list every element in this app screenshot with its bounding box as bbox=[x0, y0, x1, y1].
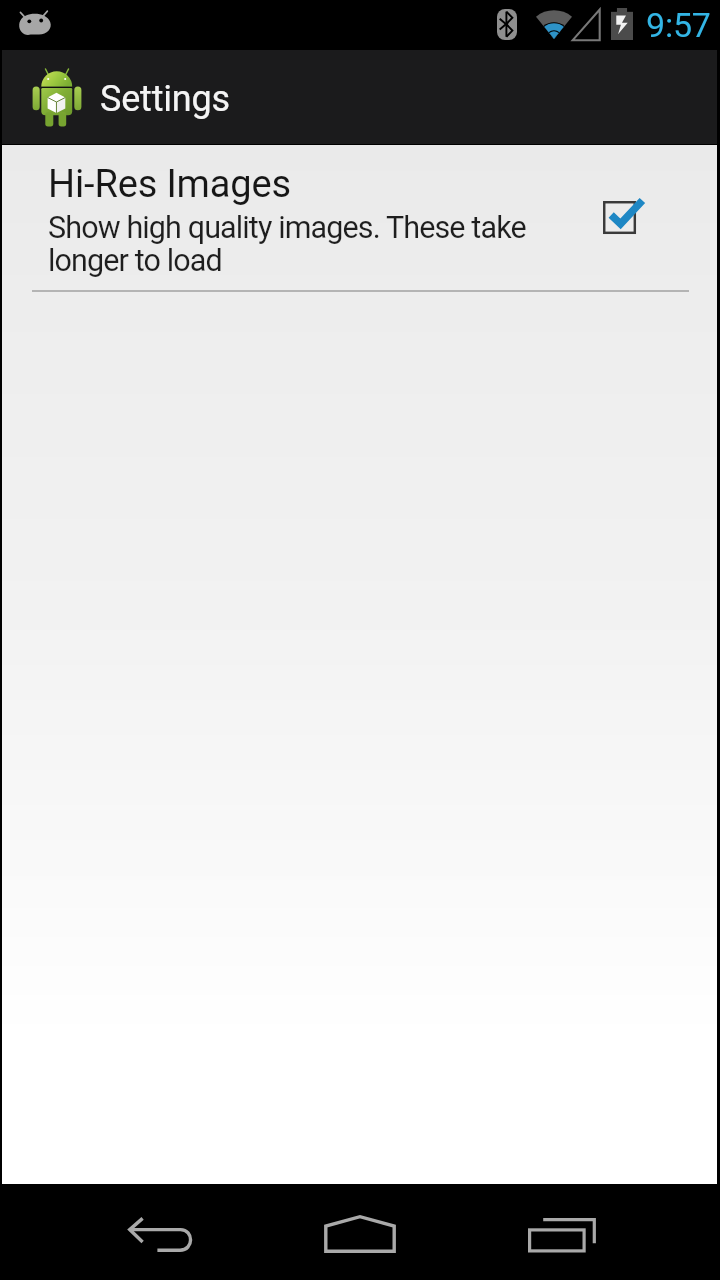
button[interactable]: Hi-Res Images bbox=[2, 145, 717, 291]
staticText: Settings bbox=[100, 78, 230, 120]
button[interactable]: Recent apps bbox=[500, 1184, 620, 1280]
staticText: Show high quality images. These take lon… bbox=[48, 210, 526, 278]
staticText: 9:57 bbox=[646, 5, 711, 45]
staticText: Hi-Res Images bbox=[48, 162, 291, 207]
button[interactable]: Back bbox=[100, 1184, 220, 1280]
button[interactable]: Home bbox=[300, 1184, 420, 1280]
button[interactable]: Settings bbox=[2, 50, 717, 145]
